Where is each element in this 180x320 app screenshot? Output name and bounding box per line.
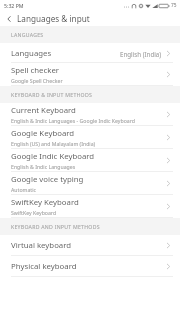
button[interactable]: Google Indic Keyboard — [0, 149, 180, 172]
staticText: Virtual keyboard — [11, 240, 72, 251]
staticText: LANGUAGES — [11, 31, 44, 38]
staticText: KEYBOARD AND INPUT METHODS — [11, 223, 100, 230]
button[interactable]: Current Keyboard — [0, 103, 180, 126]
staticText: English & Indic Languages - Google Indic… — [11, 117, 135, 124]
button[interactable]: SwiftKey Keyboard — [0, 195, 180, 218]
staticText: English (US) and Malayalam (India) — [11, 140, 96, 147]
button[interactable]: Back — [1, 11, 16, 26]
staticText: SwiftKey Keyboard — [11, 197, 79, 208]
staticText: Google Keyboard — [11, 128, 75, 139]
staticText: Google Indic Keyboard — [11, 151, 95, 162]
staticText: 75 — [171, 2, 177, 9]
staticText: Spell checker — [11, 65, 60, 76]
button[interactable]: Google Keyboard — [0, 126, 180, 149]
staticText: Current Keyboard — [11, 105, 76, 116]
staticText: English & Indic Languages — [11, 163, 76, 170]
staticText: English (India) — [120, 50, 162, 58]
staticText: 5:32 PM — [4, 2, 24, 9]
staticText: KEYBOARD & INPUT METHODS — [11, 91, 93, 98]
staticText: SwiftKey Keyboard — [11, 209, 57, 216]
button[interactable]: Spell checker — [0, 63, 180, 86]
staticText: Languages & input — [17, 13, 90, 24]
staticText: Automatic — [11, 186, 36, 193]
button[interactable]: Languages — [0, 43, 180, 63]
staticText: Google Spell Checker — [11, 77, 63, 84]
staticText: Physical keyboard — [11, 261, 77, 272]
button[interactable]: Virtual keyboard — [0, 235, 180, 256]
button[interactable]: Google voice typing — [0, 172, 180, 195]
staticText: Google voice typing — [11, 174, 84, 185]
staticText: Languages — [11, 48, 52, 59]
button[interactable]: Physical keyboard — [0, 256, 180, 277]
